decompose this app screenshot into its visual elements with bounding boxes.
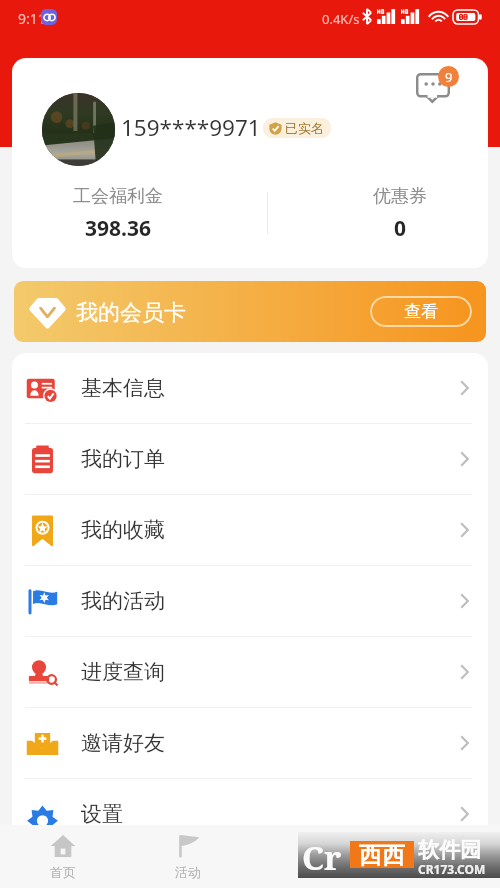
staticText: 设置 [81, 801, 123, 827]
staticText: 159****9971 [121, 112, 261, 143]
staticText: 我的收藏 [81, 517, 165, 543]
staticText: 我的会员卡 [76, 299, 186, 327]
button[interactable]: 首页 [0, 825, 125, 888]
button[interactable]: 邀请好友 [12, 708, 488, 778]
staticText: 首页 [50, 864, 76, 880]
button[interactable]: 基本信息 [12, 353, 488, 423]
staticText: CR173.COM [418, 861, 486, 877]
staticText: 邀请好友 [81, 730, 165, 756]
button[interactable]: Messages [408, 62, 464, 118]
staticText: 我的订单 [81, 446, 165, 472]
button[interactable]: 查看 [370, 296, 472, 327]
button[interactable]: 设置 [12, 779, 488, 849]
staticText: 工会福利金 [73, 185, 163, 208]
staticText: 基本信息 [81, 375, 165, 401]
staticText: 查看 [404, 301, 438, 322]
button[interactable]: 我的会员卡 [14, 281, 486, 342]
button[interactable]: 我的收藏 [12, 495, 488, 565]
staticText: 我的活动 [81, 588, 165, 614]
staticText: Cr [302, 835, 342, 880]
button[interactable]: 我的订单 [12, 424, 488, 494]
staticText: 398.36 [85, 214, 151, 243]
button[interactable]: 进度查询 [12, 637, 488, 707]
staticText: 9 [445, 68, 453, 86]
button[interactable]: 活动 [125, 825, 250, 888]
staticText: 已实名 [285, 120, 324, 136]
staticText: 0 [394, 214, 407, 243]
staticText: 活动 [175, 864, 201, 880]
staticText: 软件园 [418, 837, 481, 863]
staticText: 优惠券 [373, 185, 427, 208]
staticText: 0.4K/s [322, 10, 360, 28]
button[interactable]: 我的活动 [12, 566, 488, 636]
staticText: 9:11 [18, 9, 46, 28]
staticText: 西西 [359, 841, 405, 868]
staticText: 进度查询 [81, 659, 165, 685]
